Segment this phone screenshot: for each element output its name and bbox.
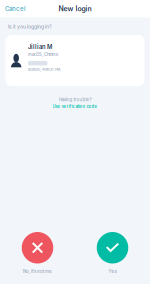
staticText: New login xyxy=(58,5,91,13)
button[interactable]: Yes xyxy=(81,232,143,274)
staticText: Is it you logging in? xyxy=(8,23,52,30)
staticText: Jillian M xyxy=(28,43,52,50)
button[interactable]: Use verification code xyxy=(52,104,97,109)
button[interactable]: No, it's not me xyxy=(6,232,68,274)
staticText: 8/28/25, 4:00:21 PM xyxy=(28,67,60,72)
staticText: Having trouble? xyxy=(58,97,91,102)
button[interactable]: Cancel xyxy=(0,1,31,16)
staticText: Cancel xyxy=(5,5,26,12)
staticText: Use verification code xyxy=(52,104,97,109)
staticText: No, it's not me xyxy=(23,268,52,274)
staticText: Yes xyxy=(108,268,116,274)
staticText: macOS, Chrome xyxy=(28,52,58,57)
